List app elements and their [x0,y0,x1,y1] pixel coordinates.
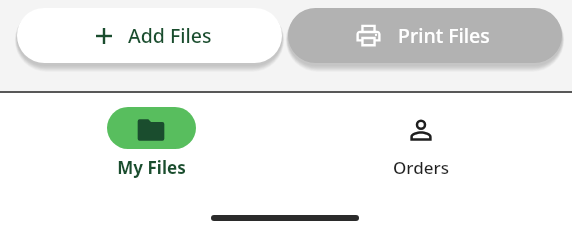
staticText: Add Files [128,22,212,49]
button[interactable]: My Files [81,101,221,179]
button[interactable]: Print [288,8,562,63]
other: Print [354,21,383,50]
button[interactable]: Add [17,8,282,63]
staticText: My Files [117,156,186,179]
button[interactable]: Orders [351,101,491,179]
other: Add [92,24,116,48]
staticText: Print Files [398,22,490,49]
staticText: Orders [393,156,449,179]
